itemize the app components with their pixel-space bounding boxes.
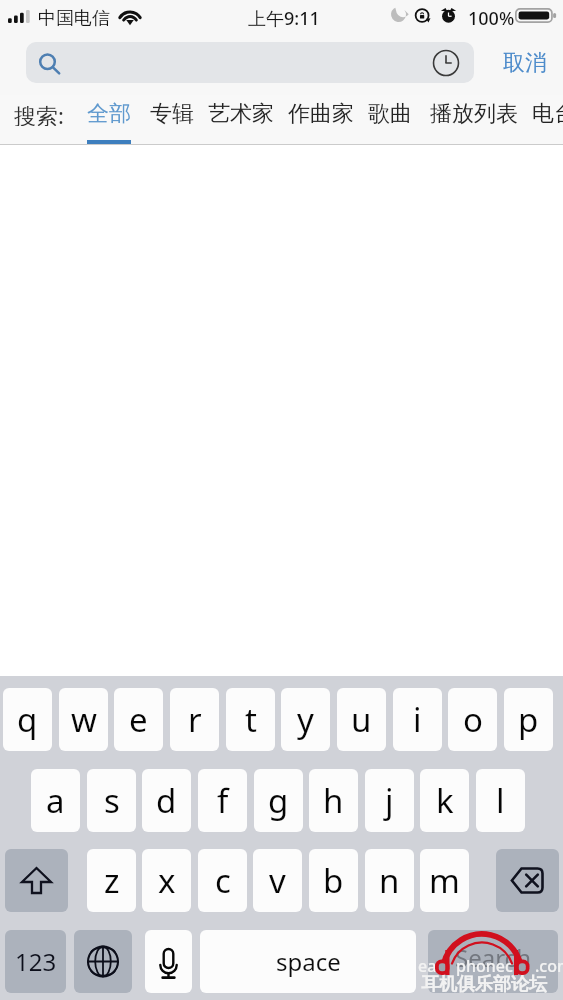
button[interactable]: s xyxy=(87,769,136,832)
button[interactable]: v xyxy=(253,849,302,912)
button[interactable]: e xyxy=(114,688,163,751)
button[interactable]: j xyxy=(365,769,414,832)
button[interactable]: 专辑 xyxy=(144,95,200,145)
staticText: v xyxy=(269,858,286,903)
staticText: 专辑 xyxy=(150,100,194,126)
button[interactable]: q xyxy=(3,688,52,751)
staticText: ea xyxy=(418,955,437,977)
button[interactable]: 搜索: xyxy=(14,100,64,126)
button[interactable]: Backspace xyxy=(496,849,559,912)
staticText: 中国电信 xyxy=(38,7,110,30)
staticText: i xyxy=(413,697,422,742)
staticText: y xyxy=(297,697,314,742)
staticText: x xyxy=(158,858,176,903)
button[interactable]: 播放列表 xyxy=(424,95,524,145)
button[interactable]: w xyxy=(59,688,108,751)
button[interactable]: t xyxy=(226,688,275,751)
button[interactable]: 全部 xyxy=(81,95,137,145)
button[interactable]: p xyxy=(504,688,553,751)
staticText: n xyxy=(379,858,400,903)
staticText: q xyxy=(17,697,38,742)
staticText: b xyxy=(323,858,344,903)
button[interactable]: z xyxy=(87,849,136,912)
button[interactable]: h xyxy=(309,769,358,832)
staticText: space xyxy=(276,945,341,978)
button[interactable]: 作曲家 xyxy=(282,95,360,145)
staticText: z xyxy=(104,858,120,903)
staticText: 艺术家 xyxy=(208,100,274,126)
button[interactable]: b xyxy=(309,849,358,912)
staticText: u xyxy=(351,697,372,742)
button[interactable]: u xyxy=(337,688,386,751)
button[interactable]: Recent searches xyxy=(26,42,474,83)
button[interactable]: c xyxy=(198,849,247,912)
staticText: w xyxy=(71,697,97,742)
staticText: a xyxy=(46,778,65,823)
button[interactable]: 艺术家 xyxy=(202,95,280,145)
staticText: j xyxy=(385,778,394,823)
staticText: d xyxy=(156,778,177,823)
staticText: r xyxy=(188,697,202,742)
button[interactable]: l xyxy=(476,769,525,832)
button[interactable]: f xyxy=(198,769,247,832)
staticText: o xyxy=(463,697,483,742)
staticText: l xyxy=(496,778,505,823)
staticText: Search xyxy=(455,941,531,974)
staticText: phoneclu xyxy=(456,955,528,977)
button[interactable]: a xyxy=(31,769,80,832)
button[interactable]: o xyxy=(448,688,497,751)
staticText: 作曲家 xyxy=(288,100,354,126)
staticText: 歌曲 xyxy=(368,100,412,126)
staticText: m xyxy=(429,858,460,903)
staticText: 100% xyxy=(468,6,515,31)
button[interactable]: i xyxy=(393,688,442,751)
staticText: e xyxy=(129,697,148,742)
staticText: 搜索: xyxy=(14,100,64,126)
staticText: 取消 xyxy=(503,49,547,77)
staticText: 123 xyxy=(15,945,57,978)
button[interactable]: n xyxy=(365,849,414,912)
staticText: 电台 xyxy=(532,100,563,126)
staticText: 耳机俱乐部论坛 xyxy=(421,973,547,996)
staticText: 播放列表 xyxy=(430,100,518,126)
staticText: s xyxy=(104,778,120,823)
staticText: g xyxy=(268,778,289,823)
button[interactable]: d xyxy=(142,769,191,832)
button[interactable] xyxy=(428,930,558,993)
button[interactable]: space xyxy=(200,930,416,993)
staticText: c xyxy=(215,858,231,903)
button[interactable]: m xyxy=(420,849,469,912)
button[interactable]: 取消 xyxy=(492,42,558,83)
staticText: t xyxy=(245,697,257,742)
staticText: k xyxy=(436,778,454,823)
staticText: p xyxy=(518,697,539,742)
button[interactable]: Shift xyxy=(5,849,68,912)
button[interactable]: Dictation xyxy=(145,930,192,993)
button[interactable]: Recent searches xyxy=(430,47,462,79)
button[interactable]: r xyxy=(170,688,219,751)
staticText: .com xyxy=(535,955,563,977)
button[interactable]: 歌曲 xyxy=(362,95,418,145)
button[interactable]: g xyxy=(254,769,303,832)
staticText: 上午9:11 xyxy=(248,6,320,31)
button[interactable]: k xyxy=(420,769,469,832)
button[interactable]: x xyxy=(142,849,191,912)
button[interactable]: 123 xyxy=(5,930,66,993)
staticText: h xyxy=(323,778,344,823)
staticText: 全部 xyxy=(87,100,131,126)
button[interactable]: 电台 xyxy=(526,95,563,145)
staticText: f xyxy=(217,778,229,823)
button[interactable]: Switch keyboard xyxy=(74,930,132,993)
button[interactable]: y xyxy=(281,688,330,751)
